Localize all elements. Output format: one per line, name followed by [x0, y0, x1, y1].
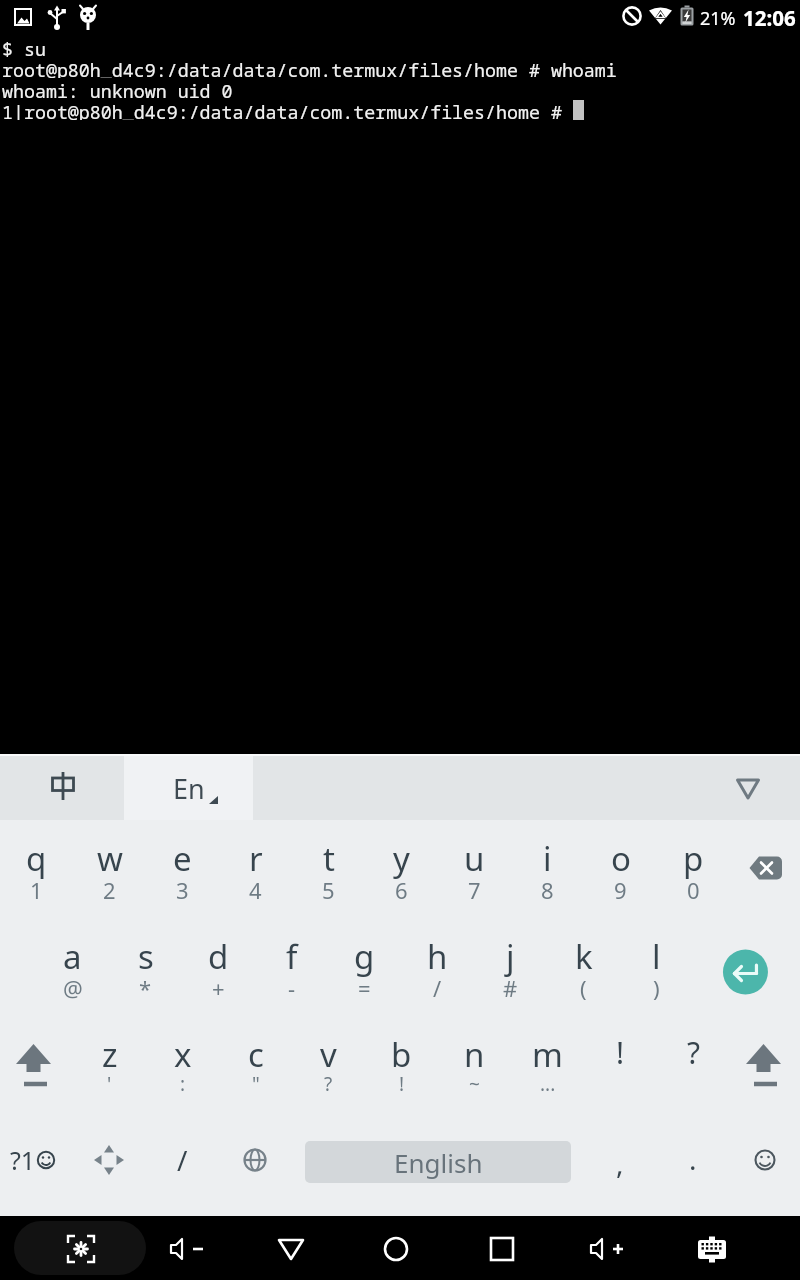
staticText: n: [464, 1032, 485, 1077]
button[interactable]: [0, 1016, 73, 1114]
button[interactable]: ,: [583, 1114, 656, 1216]
staticText: 1: [30, 875, 43, 905]
button[interactable]: English: [292, 1114, 583, 1216]
staticText: ~: [469, 1071, 480, 1097]
button[interactable]: n: [438, 1016, 511, 1114]
button[interactable]: g: [328, 918, 401, 1016]
staticText: 2: [103, 875, 116, 905]
button[interactable]: ?1: [0, 1114, 73, 1216]
staticText: ,: [616, 1144, 624, 1182]
button[interactable]: [0, 756, 124, 820]
button[interactable]: [730, 1016, 800, 1114]
staticText: k: [575, 934, 593, 979]
button[interactable]: a: [36, 918, 109, 1016]
staticText: e: [173, 836, 192, 881]
button[interactable]: [73, 1114, 146, 1216]
staticText: English: [394, 1145, 483, 1180]
staticText: 21%: [700, 6, 736, 31]
staticText: 6: [395, 875, 408, 905]
button[interactable]: y: [365, 820, 438, 918]
staticText: whoami: unknown uid 0: [2, 78, 233, 99]
staticText: :: [180, 1071, 186, 1097]
button[interactable]: [693, 918, 800, 1016]
staticText: s: [138, 934, 154, 979]
staticText: #: [503, 973, 518, 1003]
button[interactable]: z: [73, 1016, 146, 1114]
button[interactable]: i: [511, 820, 584, 918]
staticText: q: [26, 836, 47, 881]
staticText: d: [208, 934, 229, 979]
button[interactable]: ?: [657, 1016, 730, 1114]
staticText: v: [320, 1032, 337, 1077]
staticText: 1|root@p80h_d4c9:/data/data/com.termux/f…: [2, 99, 573, 120]
staticText: +: [212, 973, 225, 1003]
button[interactable]: c: [219, 1016, 292, 1114]
staticText: ': [107, 1071, 112, 1097]
button[interactable]: e: [146, 820, 219, 918]
button[interactable]: u: [438, 820, 511, 918]
staticText: (: [580, 973, 587, 1003]
staticText: /: [177, 1141, 188, 1179]
staticText: ): [653, 973, 660, 1003]
staticText: .: [689, 1140, 697, 1178]
staticText: h: [427, 934, 448, 979]
staticText: j: [506, 934, 515, 979]
staticText: t: [323, 836, 335, 881]
staticText: 5: [322, 875, 335, 905]
button[interactable]: q: [0, 820, 73, 918]
button[interactable]: r: [219, 820, 292, 918]
button[interactable]: j: [474, 918, 547, 1016]
button[interactable]: m: [511, 1016, 584, 1114]
staticText: f: [286, 934, 298, 979]
button[interactable]: [730, 820, 800, 918]
staticText: ?: [687, 1032, 701, 1073]
button[interactable]: En: [124, 756, 253, 820]
button[interactable]: .: [656, 1114, 729, 1216]
staticText: z: [102, 1032, 118, 1077]
staticText: m: [532, 1032, 563, 1077]
staticText: x: [174, 1032, 192, 1077]
button[interactable]: f: [255, 918, 328, 1016]
staticText: ": [252, 1071, 260, 1097]
staticText: ...: [540, 1071, 556, 1097]
staticText: g: [354, 934, 375, 979]
button[interactable]: [729, 1114, 800, 1216]
button[interactable]: t: [292, 820, 365, 918]
button[interactable]: s: [109, 918, 182, 1016]
staticText: @: [63, 973, 83, 1003]
staticText: !: [399, 1071, 405, 1097]
button[interactable]: l: [620, 918, 693, 1016]
staticText: *: [139, 973, 152, 1003]
button[interactable]: k: [547, 918, 620, 1016]
staticText: w: [97, 836, 123, 881]
staticText: 0: [687, 875, 700, 905]
staticText: En: [173, 770, 205, 807]
staticText: 8: [541, 875, 554, 905]
button[interactable]: v: [292, 1016, 365, 1114]
staticText: 12:06: [743, 4, 796, 32]
staticText: b: [391, 1032, 412, 1077]
staticText: 7: [468, 875, 481, 905]
button[interactable]: h: [401, 918, 474, 1016]
button[interactable]: b: [365, 1016, 438, 1114]
staticText: y: [393, 836, 410, 881]
staticText: ?: [324, 1071, 333, 1097]
button[interactable]: [712, 756, 784, 820]
staticText: o: [611, 836, 631, 881]
staticText: r: [249, 836, 263, 881]
button[interactable]: !: [584, 1016, 657, 1114]
button[interactable]: o: [584, 820, 657, 918]
staticText: /: [433, 973, 442, 1003]
button[interactable]: w: [73, 820, 146, 918]
button[interactable]: p: [657, 820, 730, 918]
button[interactable]: d: [182, 918, 255, 1016]
button[interactable]: x: [146, 1016, 219, 1114]
staticText: ?1: [10, 1143, 36, 1177]
staticText: 4: [249, 875, 262, 905]
staticText: !: [616, 1032, 625, 1073]
staticText: 3: [176, 875, 189, 905]
staticText: a: [63, 934, 82, 979]
staticText: root@p80h_d4c9:/data/data/com.termux/fil…: [2, 57, 617, 78]
button[interactable]: [219, 1114, 292, 1216]
button[interactable]: /: [146, 1114, 219, 1216]
